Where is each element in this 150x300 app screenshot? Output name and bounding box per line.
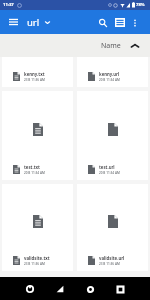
button[interactable]: Back <box>52 281 68 297</box>
button[interactable]: url <box>27 13 51 32</box>
button[interactable]: validsite.url <box>77 184 148 271</box>
button[interactable]: test.url <box>77 91 148 180</box>
staticText: kenny.url <box>99 71 120 77</box>
button[interactable]: Name <box>97 38 144 54</box>
staticText: test.txt <box>24 164 40 170</box>
staticText: 11:37 <box>3 2 14 8</box>
staticText: 78% <box>136 2 145 8</box>
button[interactable]: kenny.txt <box>2 57 73 87</box>
staticText: 23 B 11:36 AM <box>24 78 45 82</box>
staticText: validsite.txt <box>24 255 50 261</box>
staticText: kenny.txt <box>24 71 45 77</box>
staticText: 20 B 11:34 AM <box>99 78 120 82</box>
staticText: 20 B 11:34 AM <box>24 171 45 175</box>
button[interactable]: kenny.url <box>77 57 148 87</box>
staticText: 23 B 11:36 AM <box>99 262 120 266</box>
staticText: url <box>27 16 40 29</box>
button[interactable]: test.txt <box>2 91 73 180</box>
staticText: Name <box>101 41 121 51</box>
button[interactable]: More options <box>127 15 142 30</box>
button[interactable]: Recent apps <box>112 281 128 297</box>
staticText: test.url <box>99 164 115 170</box>
button[interactable]: Home <box>82 281 98 297</box>
staticText: 23 B 11:36 AM <box>24 262 45 266</box>
staticText: 20 B 11:34 AM <box>99 171 120 175</box>
staticText: validsite.url <box>99 255 125 261</box>
button[interactable]: validsite.txt <box>2 184 73 271</box>
button[interactable]: Search <box>95 15 110 30</box>
button[interactable]: Open navigation drawer <box>4 13 22 31</box>
button[interactable]: Screenshot <box>22 281 38 297</box>
button[interactable]: Change view <box>112 15 127 30</box>
